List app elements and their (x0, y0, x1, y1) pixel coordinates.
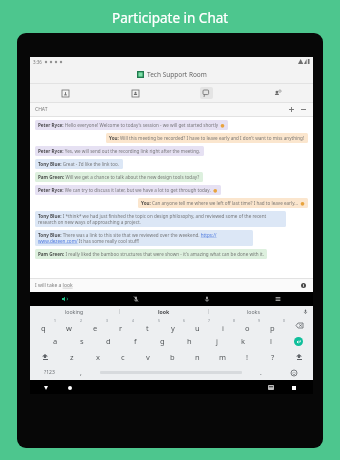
button[interactable]: , (68, 365, 94, 380)
staticText: a (53, 336, 58, 346)
button[interactable]: Volume (30, 292, 100, 306)
button[interactable]: looking (30, 306, 119, 317)
button[interactable]: Tony Blue: There was a link to this site… (38, 232, 250, 244)
staticText: , (80, 368, 82, 377)
staticText: looking (65, 308, 84, 315)
button[interactable]: 7 (185, 317, 210, 333)
button[interactable]: Recent apps (288, 382, 299, 393)
button[interactable]: 0 (260, 317, 285, 333)
button[interactable]: b (160, 349, 185, 365)
button[interactable]: Menu (242, 292, 313, 306)
staticText: t (146, 323, 149, 333)
button[interactable]: n (185, 349, 210, 365)
button[interactable]: Shift (30, 349, 59, 365)
button[interactable]: . (248, 365, 274, 380)
button[interactable]: x (85, 349, 110, 365)
button[interactable]: a (42, 333, 68, 349)
button[interactable]: People (242, 84, 313, 102)
button[interactable]: ! (235, 349, 260, 365)
button[interactable]: Participants (100, 84, 171, 102)
button[interactable]: Presentation (30, 84, 100, 102)
staticText: Tech Support Room (147, 70, 207, 79)
staticText: You: Will this meeting be recorded? I ha… (109, 135, 305, 141)
button[interactable]: Space (94, 365, 248, 380)
button[interactable]: 8 (210, 317, 235, 333)
button[interactable]: 2 (56, 317, 82, 333)
button[interactable]: Backspace (285, 317, 313, 333)
staticText: 9 (258, 318, 260, 323)
button[interactable]: 9 (235, 317, 260, 333)
button[interactable]: k (230, 333, 257, 349)
staticText: You: Can anyone tell me where we left of… (141, 200, 305, 206)
button[interactable]: 4 (108, 317, 134, 333)
staticText: l (270, 336, 272, 346)
button[interactable]: 3 (82, 317, 108, 333)
staticText: y (171, 323, 175, 333)
staticText: q (41, 323, 46, 333)
button[interactable]: Home (64, 382, 75, 393)
button[interactable]: ? (260, 349, 285, 365)
button[interactable]: m (210, 349, 235, 365)
button[interactable]: l (257, 333, 284, 349)
button[interactable]: Tony Blue: I *think* we had just finishe… (38, 213, 283, 225)
button[interactable]: s (68, 333, 95, 349)
button[interactable]: Hide keyboard (265, 382, 276, 393)
staticText: 4 (132, 318, 134, 323)
button[interactable]: d (95, 333, 122, 349)
staticText: Peter Ryce: Yes, we will send out the re… (38, 148, 201, 154)
button[interactable]: Pam Green: I really liked the bamboo str… (38, 251, 264, 257)
staticText: Participate in Chat (112, 9, 229, 27)
button[interactable]: You: Can anyone tell me where we left of… (141, 200, 305, 206)
staticText: 0 (283, 318, 285, 323)
staticText: e (93, 323, 98, 333)
button[interactable]: Voice input (297, 306, 313, 317)
button[interactable]: ?123 (30, 365, 68, 380)
button[interactable]: Peter Ryce: We can try to discuss it lat… (38, 187, 218, 193)
button[interactable]: look (120, 306, 208, 317)
button[interactable]: You: Will this meeting be recorded? I ha… (109, 135, 305, 141)
button[interactable]: Microphone (171, 292, 242, 306)
staticText: z (70, 352, 74, 362)
staticText: v (146, 352, 150, 362)
staticText: 2 (80, 318, 82, 323)
button[interactable]: looks (209, 306, 297, 317)
button[interactable]: Send (299, 281, 308, 290)
button[interactable]: Add (287, 105, 296, 114)
button[interactable]: h (176, 333, 203, 349)
staticText: o (245, 323, 250, 333)
button[interactable]: 5 (134, 317, 160, 333)
button[interactable]: g (149, 333, 176, 349)
button[interactable]: j (203, 333, 230, 349)
staticText: f (134, 336, 137, 346)
staticText: n (195, 352, 200, 362)
button[interactable]: Mute microphone (100, 292, 171, 306)
button[interactable]: Collapse (299, 105, 308, 114)
button[interactable]: Pam Green: Will we get a chance to talk … (38, 174, 200, 180)
staticText: 6 (183, 318, 185, 323)
button[interactable]: Peter Ryce: Yes, we will send out the re… (38, 148, 201, 154)
button[interactable]: 6 (160, 317, 185, 333)
staticText: Tony Blue: I *think* we had just finishe… (38, 213, 283, 225)
staticText: d (106, 336, 111, 346)
button[interactable]: Peter Ryce: Hello everyone! Welcome to t… (38, 122, 225, 128)
button[interactable]: Emoji (274, 365, 313, 380)
staticText: I will take a look (35, 282, 73, 289)
staticText: 5 (158, 318, 160, 323)
staticText: . (260, 368, 262, 377)
button[interactable]: Chat (171, 84, 242, 102)
button[interactable]: v (135, 349, 160, 365)
button[interactable]: 1 (30, 317, 56, 333)
button[interactable]: f (122, 333, 149, 349)
staticText: b (170, 352, 175, 362)
staticText: i (222, 323, 224, 333)
button[interactable]: c (110, 349, 135, 365)
button[interactable]: I will take a look (35, 279, 308, 292)
button[interactable]: Shift (285, 349, 313, 365)
button[interactable]: Enter (284, 333, 313, 349)
button[interactable]: Back (40, 382, 51, 393)
staticText: ? (271, 352, 275, 362)
button[interactable]: Tony Blue: Great - I'd like the link too… (38, 161, 120, 167)
staticText: u (195, 323, 200, 333)
button[interactable]: z (59, 349, 85, 365)
staticText: k (241, 336, 246, 346)
